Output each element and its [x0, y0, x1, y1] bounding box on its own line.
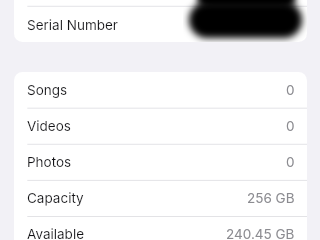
staticText: 256 GB: [247, 190, 295, 206]
staticText: Capacity: [27, 190, 84, 206]
button[interactable]: Songs: [14, 72, 307, 108]
staticText: Available: [27, 226, 85, 240]
button[interactable]: Available: [14, 216, 307, 240]
staticText: 0: [286, 154, 295, 170]
staticText: 0: [286, 82, 295, 98]
staticText: 240.45 GB: [226, 226, 295, 240]
button[interactable]: Serial Number: [14, 8, 307, 42]
button[interactable]: Capacity: [14, 180, 307, 216]
staticText: Photos: [27, 154, 72, 170]
other: Serial number redacted: [183, 0, 307, 42]
button[interactable]: Videos: [14, 108, 307, 144]
staticText: 0: [286, 118, 295, 134]
staticText: Videos: [27, 118, 71, 134]
button[interactable]: Photos: [14, 144, 307, 180]
staticText: Songs: [27, 82, 68, 98]
staticText: Serial Number: [27, 17, 118, 33]
